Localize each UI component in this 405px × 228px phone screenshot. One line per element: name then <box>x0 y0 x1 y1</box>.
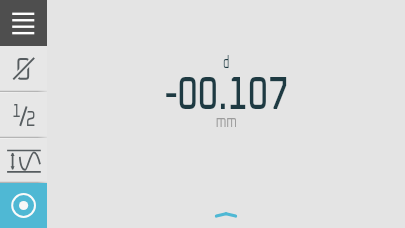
staticText: 2 <box>26 110 36 130</box>
button[interactable]: Menu <box>0 0 47 46</box>
staticText: d <box>223 54 230 72</box>
staticText: mm <box>216 114 237 131</box>
button[interactable]: Amplitude <box>0 138 47 183</box>
staticText: -00.107 <box>164 73 288 118</box>
staticText: 1 <box>12 102 21 121</box>
button[interactable]: Half <box>0 92 47 138</box>
button[interactable]: Expand <box>47 202 405 228</box>
button[interactable]: Display off <box>0 46 47 92</box>
button[interactable]: Measure <box>0 183 47 228</box>
